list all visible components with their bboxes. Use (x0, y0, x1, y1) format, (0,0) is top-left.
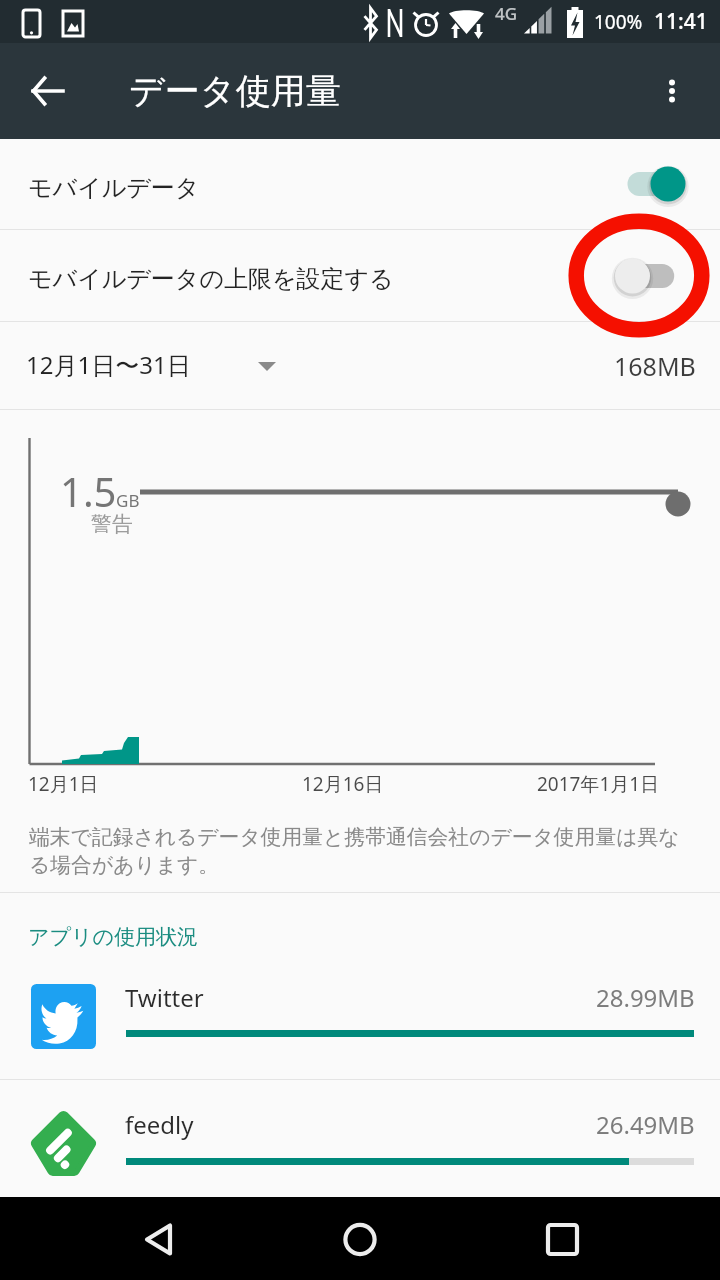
staticText: 100% (594, 9, 643, 35)
button[interactable]: Recents (493, 1197, 633, 1280)
staticText: 2017年1月1日 (537, 771, 660, 797)
staticText: 4G (495, 2, 518, 25)
button[interactable]: モバイルデータの上限を設定する (0, 230, 720, 321)
staticText: モバイルデータ (28, 173, 200, 203)
staticText: 28.99MB (596, 981, 695, 1014)
staticText: GB (116, 489, 140, 512)
button[interactable]: Back (88, 1197, 228, 1280)
staticText: アプリの使用状況 (28, 924, 198, 950)
staticText: 26.49MB (596, 1108, 695, 1141)
staticText: 11:41 (654, 7, 708, 36)
staticText: feedly (125, 1108, 194, 1141)
button[interactable]: 12月1日〜31日 (0, 322, 720, 409)
staticText: 1.5 (60, 464, 117, 518)
button[interactable]: Twitter (0, 971, 720, 1079)
button[interactable]: Back (0, 43, 96, 139)
staticText: 12月1日〜31日 (26, 348, 191, 381)
staticText: 端末で記録されるデータ使用量と携帯通信会社のデータ使用量は異な る場合があります… (29, 824, 680, 878)
button[interactable]: More options (624, 43, 720, 139)
staticText: Twitter (125, 981, 204, 1014)
staticText: データ使用量 (129, 69, 341, 113)
button[interactable]: Home (290, 1197, 430, 1280)
button[interactable]: モバイルデータ (0, 139, 720, 229)
staticText: モバイルデータの上限を設定する (28, 264, 394, 294)
staticText: 12月16日 (302, 771, 384, 797)
staticText: 168MB (614, 349, 696, 383)
staticText: 12月1日 (28, 771, 99, 797)
staticText: 警告 (91, 511, 133, 537)
button[interactable]: feedly (0, 1080, 720, 1197)
